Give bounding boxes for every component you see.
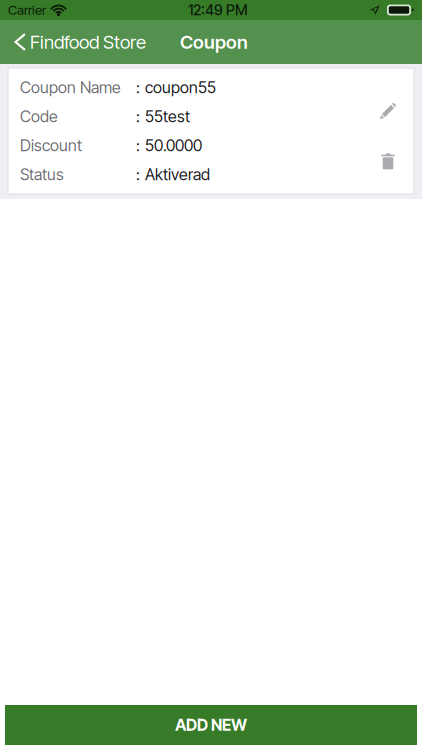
staticText: : <box>136 136 140 155</box>
staticText: Code <box>20 107 58 126</box>
staticText: : <box>136 165 140 184</box>
staticText: Status <box>20 165 64 184</box>
staticText: Aktiverad <box>145 165 210 184</box>
staticText: Findfood Store <box>30 31 146 53</box>
staticText: ADD NEW <box>175 715 247 735</box>
staticText: Discount <box>20 136 82 155</box>
button[interactable]: Delete coupon <box>366 139 410 183</box>
staticText: coupon55 <box>145 78 216 97</box>
staticText: 55test <box>145 107 190 126</box>
staticText: : <box>136 78 140 97</box>
staticText: 50.0000 <box>145 136 202 155</box>
staticText: 12:49 PM <box>188 1 248 19</box>
button[interactable]: Findfood Store <box>0 20 156 64</box>
staticText: : <box>136 107 140 126</box>
button[interactable]: Edit coupon <box>366 89 410 133</box>
staticText: Coupon <box>180 31 248 53</box>
staticText: Carrier <box>8 2 46 18</box>
button[interactable]: ADD NEW <box>5 705 417 745</box>
staticText: Coupon Name <box>20 78 121 97</box>
